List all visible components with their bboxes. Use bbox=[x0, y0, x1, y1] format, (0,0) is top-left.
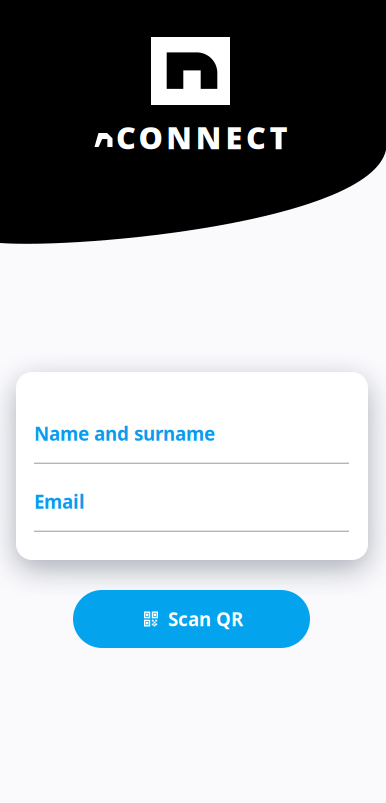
staticText: Name and surname bbox=[34, 421, 215, 446]
staticText: CONNECT bbox=[116, 117, 288, 158]
staticText: Email bbox=[34, 489, 85, 514]
button[interactable]: Scan QR bbox=[73, 590, 310, 648]
button[interactable]: Email bbox=[34, 489, 349, 532]
staticText: Scan QR bbox=[168, 607, 243, 631]
button[interactable]: Name and surname bbox=[34, 421, 349, 464]
